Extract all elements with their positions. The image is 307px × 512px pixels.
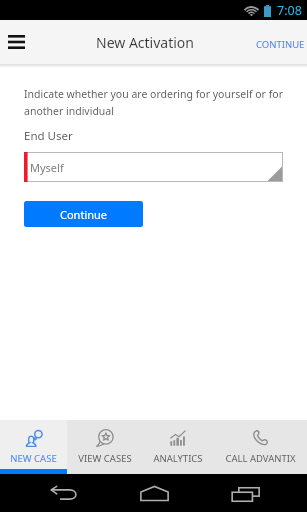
staticText: Indicate whether you are ordering for yo… xyxy=(24,87,283,118)
staticText: Continue xyxy=(60,207,108,222)
staticText: ANALYTICS xyxy=(153,452,203,465)
staticText: 7:08 xyxy=(277,2,302,19)
staticText: Myself xyxy=(30,160,64,175)
staticText: End User xyxy=(24,128,73,144)
button[interactable]: CONTINUE xyxy=(254,36,303,49)
button[interactable]: Back xyxy=(39,480,89,506)
button[interactable]: NEW CASE xyxy=(0,420,67,474)
staticText: NEW CASE xyxy=(10,452,57,465)
staticText: CALL ADVANTIX xyxy=(225,452,296,465)
button[interactable]: Myself xyxy=(24,152,283,182)
button[interactable]: CALL ADVANTIX xyxy=(213,420,307,474)
button[interactable]: Continue xyxy=(24,201,143,227)
staticText: New Activation xyxy=(96,33,194,52)
button[interactable]: ANALYTICS xyxy=(143,420,213,474)
button[interactable]: Recent apps xyxy=(220,481,270,507)
button[interactable]: VIEW CASES xyxy=(67,420,143,474)
button[interactable]: Home xyxy=(129,480,179,506)
staticText: CONTINUE xyxy=(256,38,305,51)
staticText: VIEW CASES xyxy=(78,452,132,465)
button[interactable]: Open navigation menu xyxy=(2,28,30,56)
